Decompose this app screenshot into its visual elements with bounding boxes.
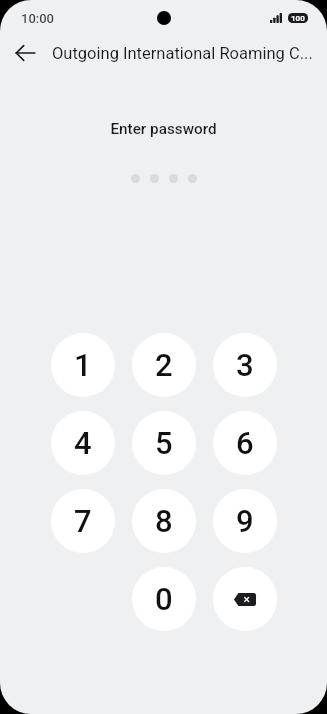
button[interactable]: Backspace (213, 567, 277, 631)
staticText: 5 (155, 425, 173, 461)
staticText: 4 (74, 425, 92, 461)
staticText: Outgoing International Roaming C... (52, 44, 313, 63)
staticText: 3 (236, 347, 254, 383)
button[interactable]: 9 (213, 489, 277, 553)
button[interactable]: 8 (132, 489, 196, 553)
button[interactable]: 1 (51, 333, 115, 397)
staticText: 10:00 (21, 11, 54, 26)
button[interactable]: 7 (51, 489, 115, 553)
staticText: 0 (155, 581, 173, 617)
staticText: Enter password (0, 120, 327, 138)
button[interactable]: 2 (132, 333, 196, 397)
staticText: 6 (236, 425, 254, 461)
staticText: 8 (155, 503, 173, 539)
staticText: 9 (236, 503, 254, 539)
staticText: 2 (155, 347, 173, 383)
button[interactable]: 0 (132, 567, 196, 631)
staticText: 7 (74, 503, 92, 539)
button[interactable]: 3 (213, 333, 277, 397)
button[interactable]: 6 (213, 411, 277, 475)
button[interactable]: Back (5, 33, 47, 73)
button[interactable]: 5 (132, 411, 196, 475)
staticText: 1 (74, 347, 92, 383)
button[interactable]: 4 (51, 411, 115, 475)
staticText: 100 (291, 14, 305, 23)
